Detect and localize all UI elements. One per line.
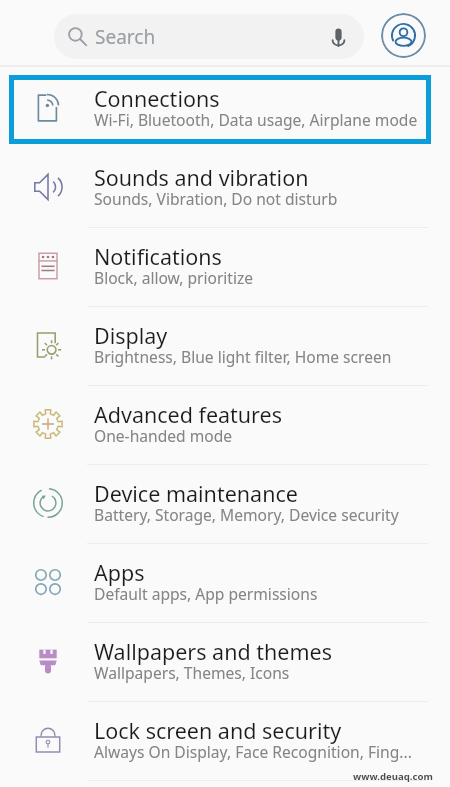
other: Voice search xyxy=(326,24,351,49)
staticText: Search xyxy=(95,24,156,50)
staticText: Notifications xyxy=(94,242,222,271)
button[interactable]: Wallpapers and themes xyxy=(0,623,450,702)
staticText: Default apps, App permissions xyxy=(94,583,318,604)
button[interactable]: Connections xyxy=(0,75,450,149)
staticText: Always On Display, Face Recognition, Fin… xyxy=(94,741,412,762)
staticText: Wallpapers and themes xyxy=(94,637,332,666)
staticText: Device maintenance xyxy=(94,479,298,508)
staticText: Wallpapers, Themes, Icons xyxy=(94,662,290,683)
staticText: www.deuaq.com xyxy=(353,770,433,783)
button[interactable]: Apps xyxy=(0,544,450,623)
staticText: Display xyxy=(94,321,168,350)
staticText: Sounds, Vibration, Do not disturb xyxy=(94,188,338,209)
button[interactable]: Device maintenance xyxy=(0,465,450,544)
staticText: Apps xyxy=(94,558,145,587)
staticText: Lock screen and security xyxy=(94,716,342,745)
button[interactable]: Notifications xyxy=(0,228,450,307)
button[interactable]: Display xyxy=(0,307,450,386)
staticText: Connections xyxy=(94,84,220,113)
button[interactable]: Search xyxy=(54,14,364,59)
staticText: Sounds and vibration xyxy=(94,163,309,192)
staticText: Battery, Storage, Memory, Device securit… xyxy=(94,504,399,525)
staticText: Wi-Fi, Bluetooth, Data usage, Airplane m… xyxy=(94,109,418,130)
button[interactable]: Sounds and vibration xyxy=(0,149,450,228)
staticText: Advanced features xyxy=(94,400,282,429)
button[interactable]: Account xyxy=(381,13,426,58)
staticText: Block, allow, prioritize xyxy=(94,267,254,288)
button[interactable]: Advanced features xyxy=(0,386,450,465)
staticText: Brightness, Blue light filter, Home scre… xyxy=(94,346,392,367)
staticText: One-handed mode xyxy=(94,425,233,446)
button[interactable]: Lock screen and security xyxy=(0,702,450,781)
